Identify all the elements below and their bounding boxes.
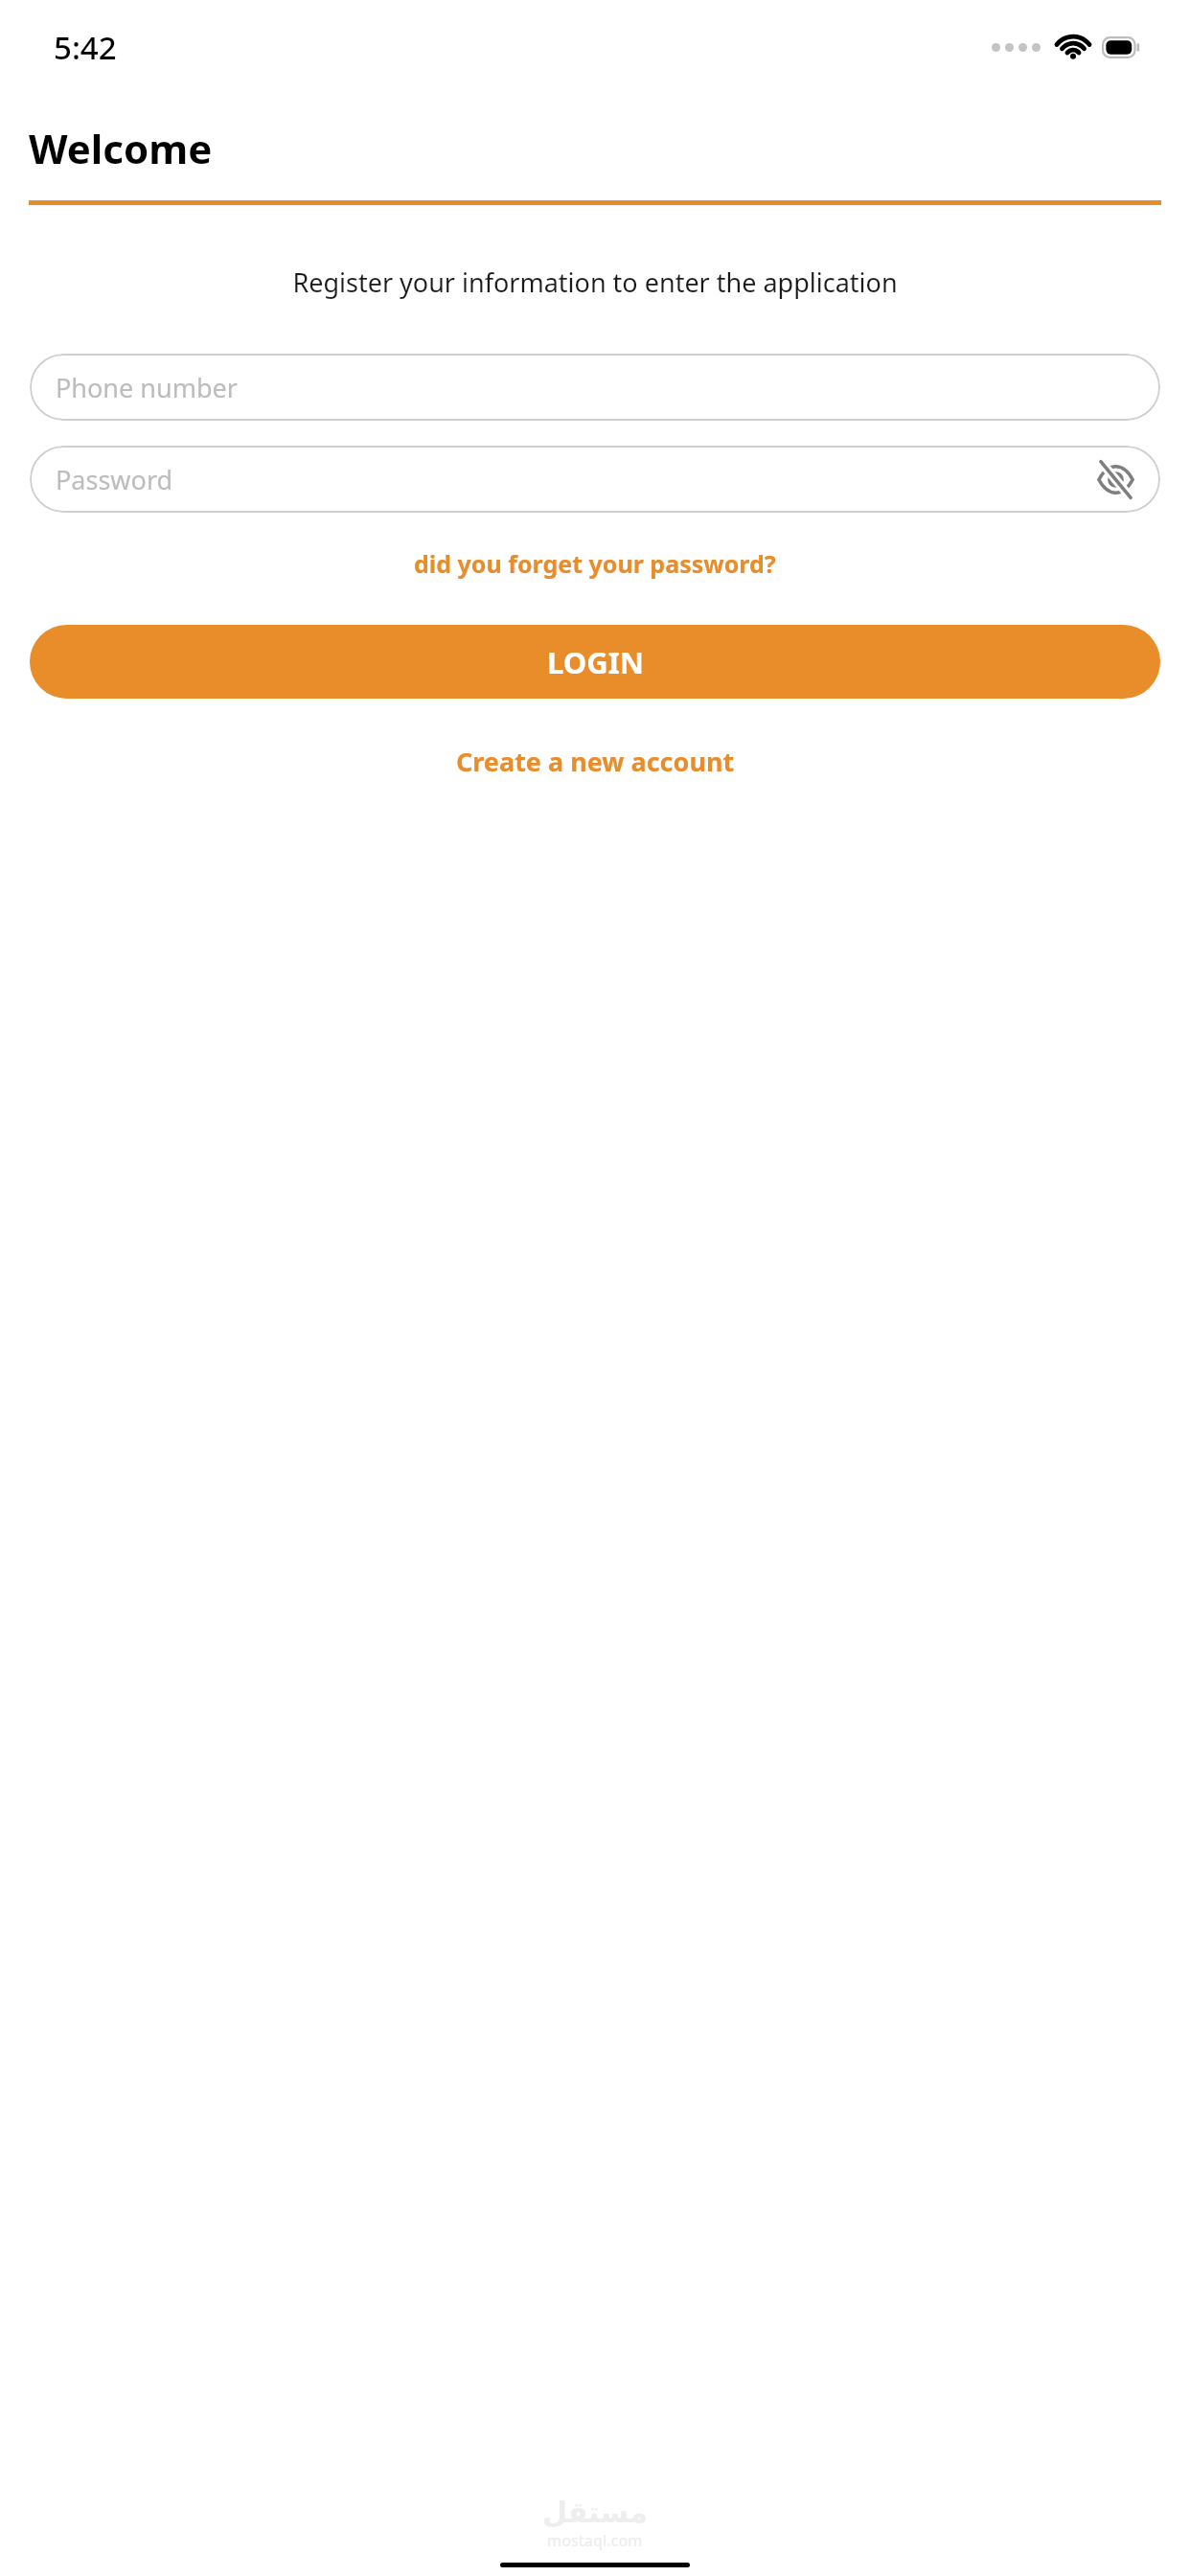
staticText: Create a new account — [456, 744, 735, 779]
staticText: mostaql.com — [547, 2530, 643, 2551]
button[interactable]: Show password — [1088, 452, 1142, 506]
button[interactable]: Create a new account — [0, 744, 1190, 779]
button[interactable]: did you forget your password? — [0, 547, 1190, 580]
staticText: Register your information to enter the a… — [0, 264, 1190, 300]
staticText: LOGIN — [547, 642, 644, 682]
staticText: 5:42 — [54, 26, 117, 69]
staticText: Phone number — [56, 370, 238, 405]
staticText: مستقل — [542, 2495, 648, 2529]
button[interactable]: Phone number — [30, 354, 1160, 421]
staticText: Password — [56, 462, 173, 497]
staticText: Welcome — [29, 121, 213, 175]
staticText: did you forget your password? — [414, 547, 776, 580]
button[interactable]: LOGIN — [30, 625, 1160, 699]
button[interactable]: Password — [30, 446, 1160, 513]
